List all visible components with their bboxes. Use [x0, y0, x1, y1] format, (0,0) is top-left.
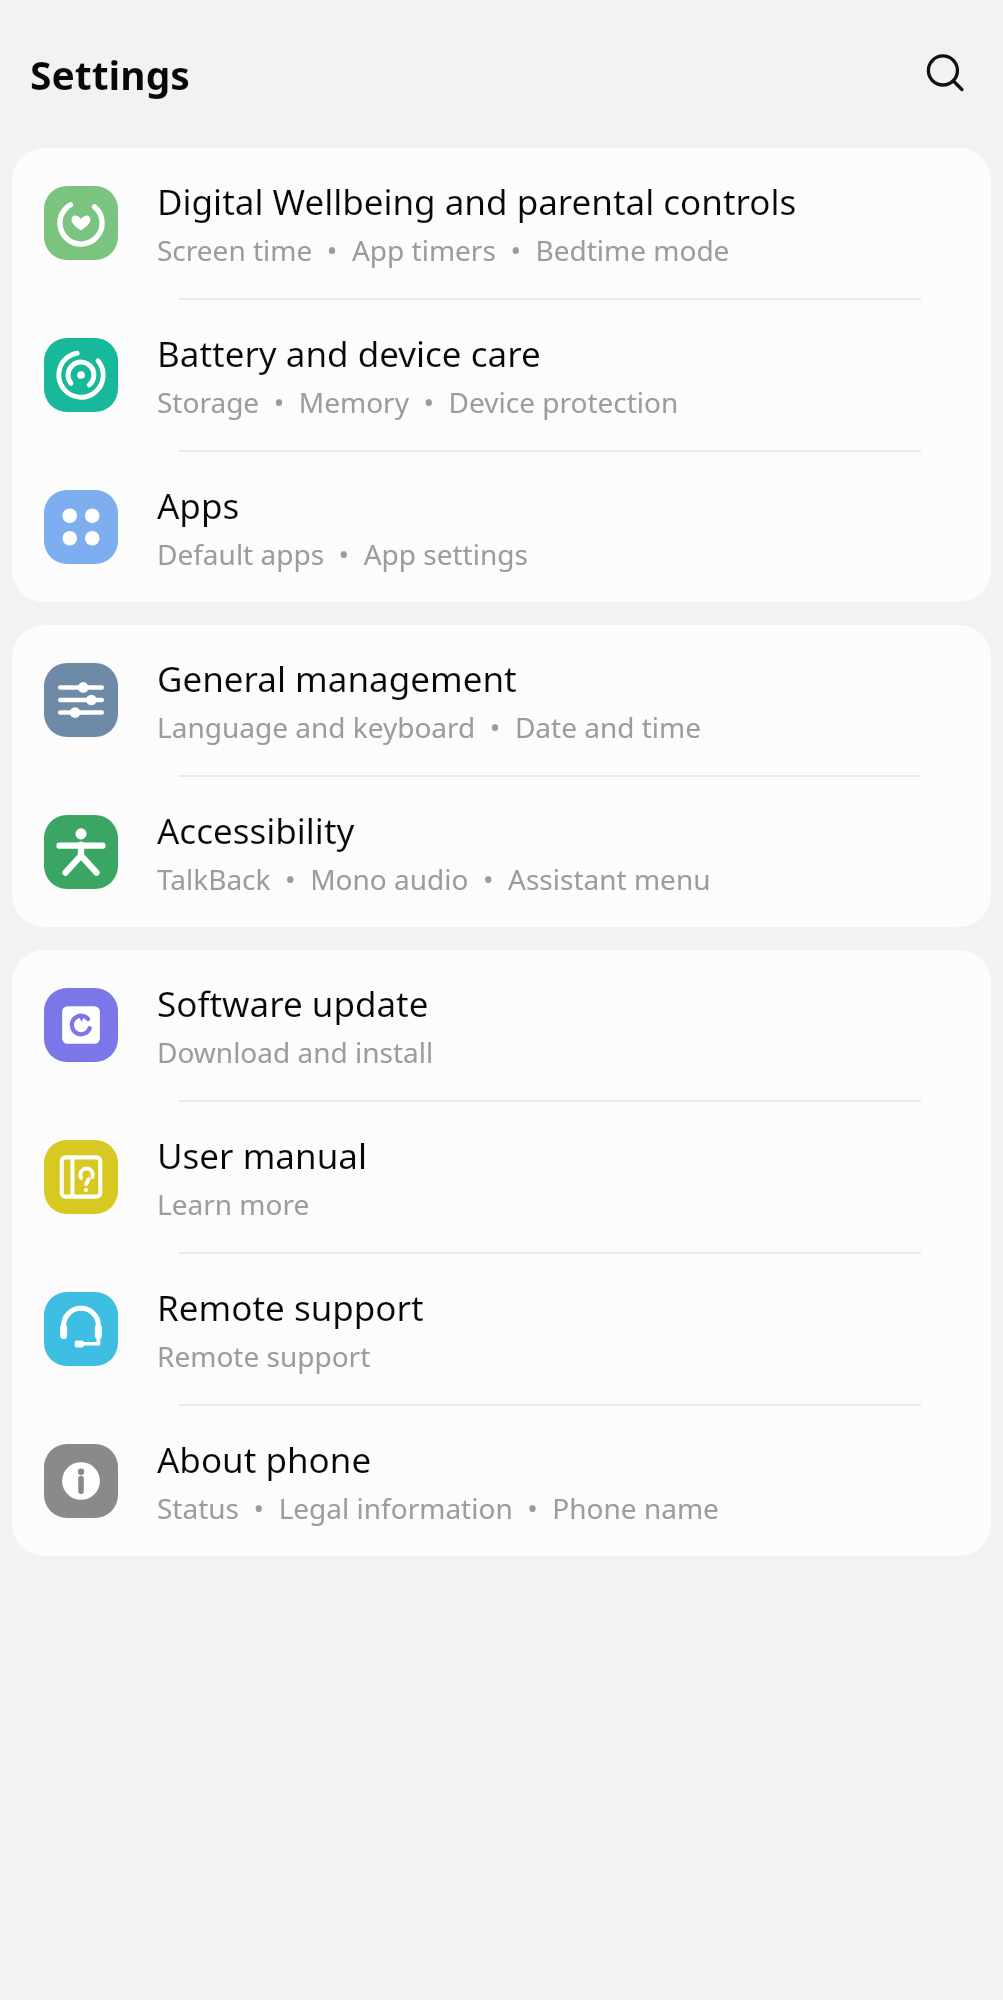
staticText: Software update: [157, 980, 429, 1028]
staticText: Accessibility: [157, 807, 355, 855]
staticText: Screen time • App timers • Bedtime mode: [157, 231, 730, 269]
staticText: Apps: [157, 482, 240, 530]
staticText: Remote support: [157, 1337, 371, 1375]
button[interactable]: Apps: [12, 452, 991, 602]
button[interactable]: About phone: [12, 1406, 991, 1556]
button[interactable]: Search: [915, 43, 977, 105]
staticText: TalkBack • Mono audio • Assistant menu: [157, 860, 711, 898]
button[interactable]: User manual: [12, 1102, 991, 1252]
staticText: General management: [157, 655, 517, 703]
staticText: Default apps • App settings: [157, 535, 528, 573]
button[interactable]: Software update: [12, 950, 991, 1100]
button[interactable]: Accessibility: [12, 777, 991, 927]
button[interactable]: Digital Wellbeing and parental controls: [12, 148, 991, 298]
staticText: Settings: [30, 48, 190, 101]
staticText: Status • Legal information • Phone name: [157, 1489, 719, 1527]
staticText: Remote support: [157, 1284, 424, 1332]
staticText: Storage • Memory • Device protection: [157, 383, 679, 421]
staticText: User manual: [157, 1132, 367, 1180]
staticText: Battery and device care: [157, 330, 541, 378]
staticText: About phone: [157, 1436, 372, 1484]
staticText: Download and install: [157, 1033, 434, 1071]
staticText: Language and keyboard • Date and time: [157, 708, 702, 746]
button[interactable]: Battery and device care: [12, 300, 991, 450]
staticText: Digital Wellbeing and parental controls: [157, 178, 797, 226]
button[interactable]: General management: [12, 625, 991, 775]
staticText: Learn more: [157, 1185, 310, 1223]
button[interactable]: Remote support: [12, 1254, 991, 1404]
